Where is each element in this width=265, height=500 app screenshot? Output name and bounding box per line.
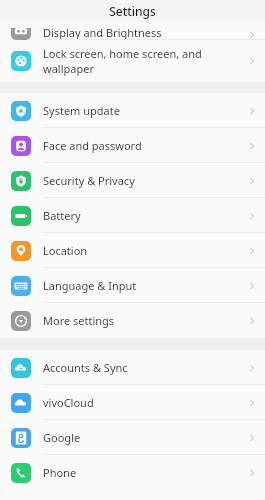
staticText: Phone [43, 465, 77, 480]
button[interactable]: Lock screen, home screen, and [0, 40, 265, 82]
button[interactable]: Display and Brightness [0, 22, 265, 40]
button[interactable]: System update [0, 93, 265, 128]
button[interactable]: Battery [0, 198, 265, 233]
button[interactable]: vivoCloud [0, 385, 265, 420]
button[interactable]: Phone [0, 455, 265, 490]
staticText: Language & Input [43, 278, 137, 293]
button[interactable]: More settings [0, 303, 265, 338]
staticText: Settings [109, 3, 156, 19]
staticText: Accounts & Sync [43, 360, 128, 375]
staticText: Battery [43, 208, 81, 223]
staticText: wallpaper [43, 61, 94, 76]
button[interactable]: Accounts & Sync [0, 350, 265, 385]
staticText: More settings [43, 313, 115, 328]
staticText: vivoCloud [43, 395, 94, 410]
staticText: Location [43, 243, 88, 258]
staticText: Lock screen, home screen, and [43, 46, 202, 61]
button[interactable]: Security & Privacy [0, 163, 265, 198]
staticText: System update [43, 103, 120, 118]
staticText: Display and Brightness [43, 25, 162, 40]
staticText: Security & Privacy [43, 173, 135, 188]
button[interactable]: Location [0, 233, 265, 268]
button[interactable]: Language & Input [0, 268, 265, 303]
button[interactable]: Google [0, 420, 265, 455]
staticText: Face and password [43, 138, 142, 153]
button[interactable]: Face and password [0, 128, 265, 163]
staticText: Google [43, 430, 81, 445]
